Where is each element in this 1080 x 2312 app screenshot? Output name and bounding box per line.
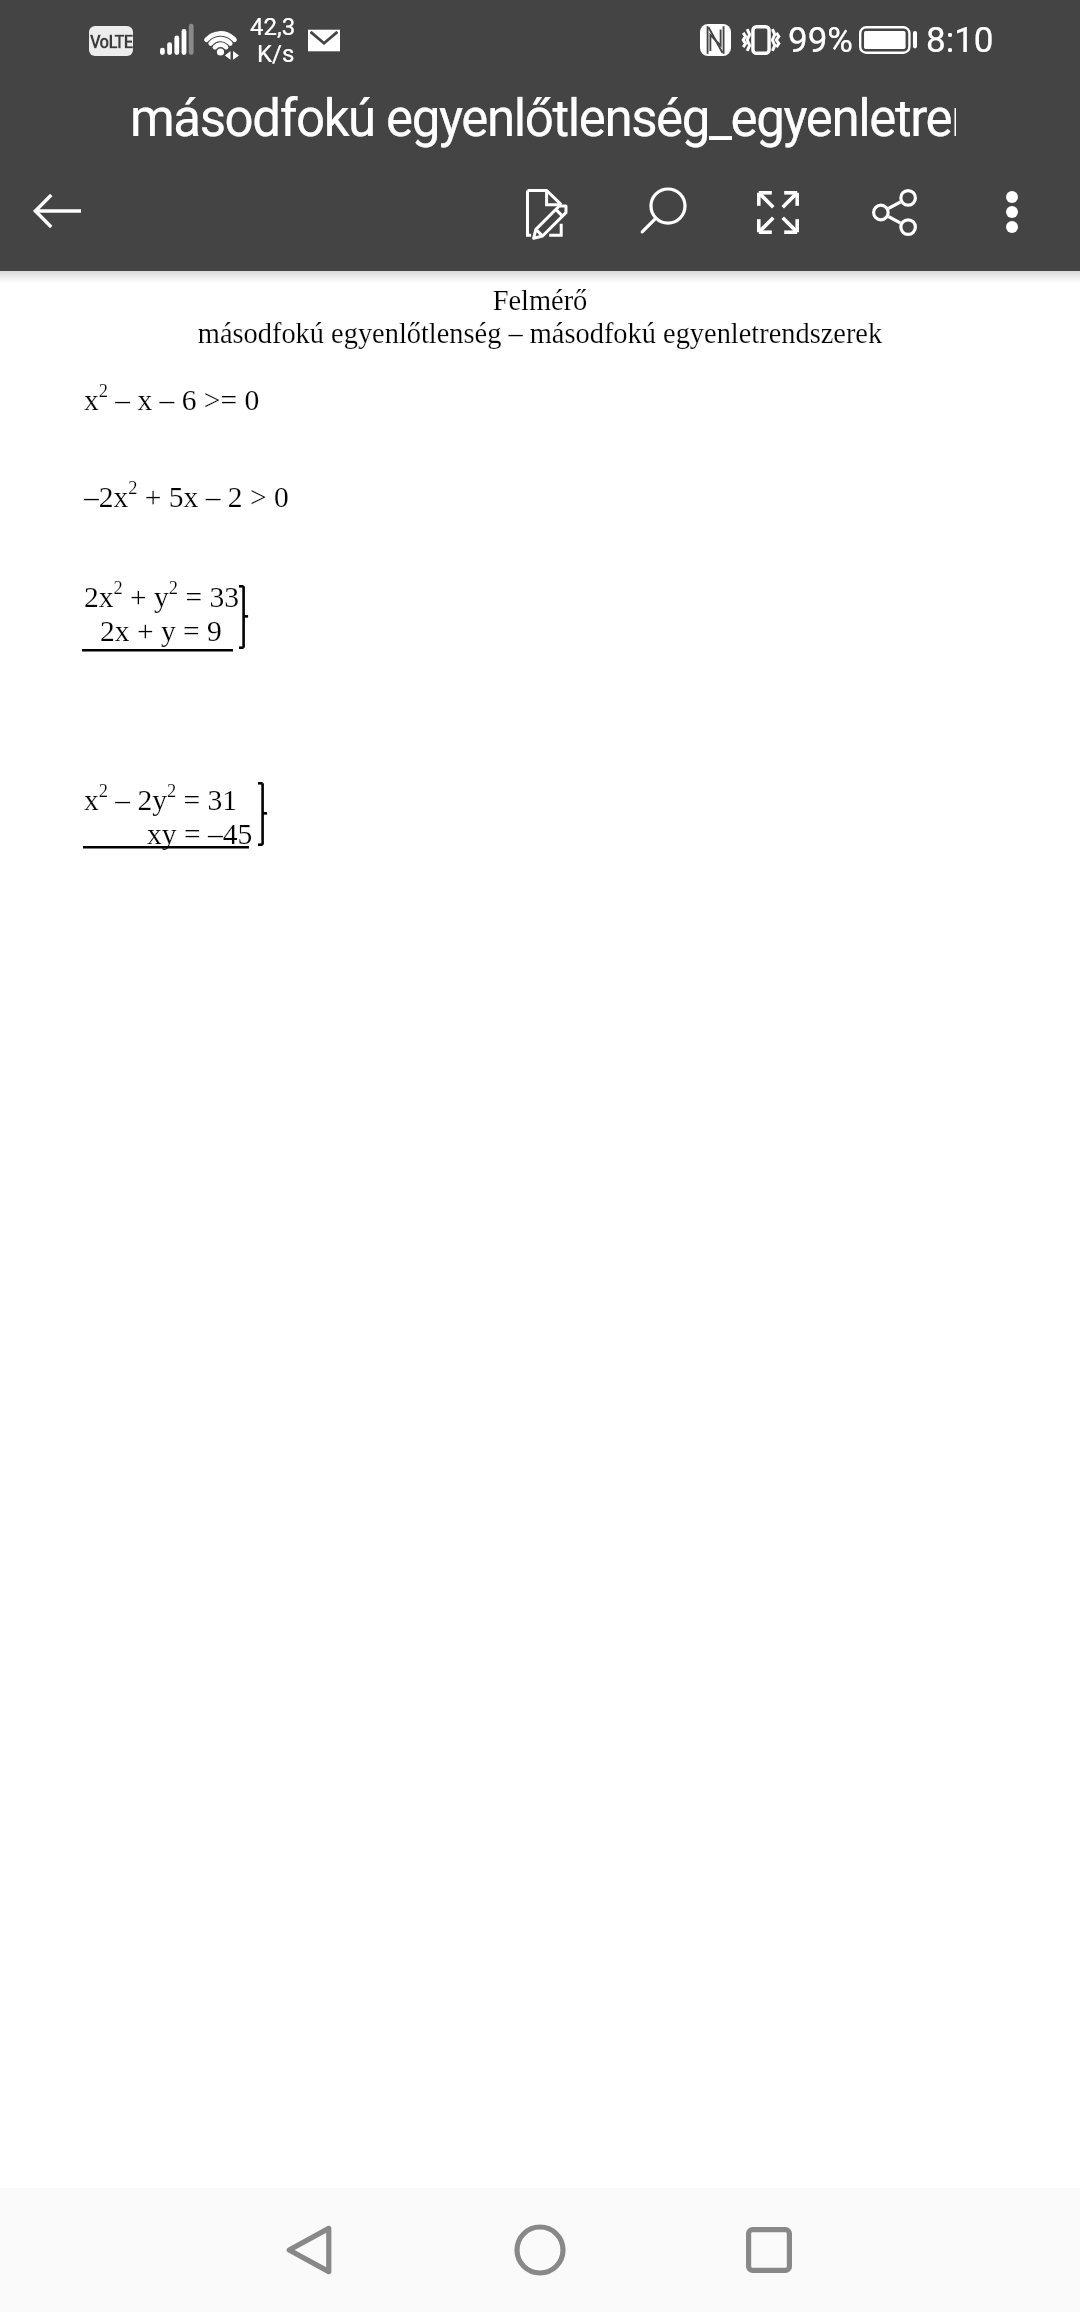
button[interactable]: Recents (707, 2188, 831, 2312)
button[interactable]: Edit (494, 159, 602, 267)
button[interactable]: Back (3, 157, 111, 265)
button[interactable]: More options (958, 158, 1066, 266)
button[interactable]: Fullscreen (724, 158, 832, 266)
staticText: VoLTE (90, 30, 133, 52)
staticText: –2x2 + 5x – 2 > 0 (84, 478, 289, 513)
staticText: másodfokú egyenlőtlenség – másodfokú egy… (0, 318, 1080, 349)
button[interactable]: Back (247, 2188, 371, 2312)
button[interactable]: Share (840, 158, 948, 266)
staticText: másodfokú egyenlőtlenség_egyenletrendsze… (130, 89, 956, 149)
staticText: x2 – 2y2 = 31 (84, 781, 238, 816)
staticText: 2x + y = 9 (100, 615, 222, 648)
staticText: 99% (788, 20, 853, 61)
button[interactable]: Search (608, 158, 716, 266)
staticText: 42,3 (250, 13, 296, 41)
staticText: x2 – x – 6 >= 0 (84, 381, 260, 416)
staticText: 8:10 (926, 20, 994, 61)
button[interactable]: Home (478, 2188, 602, 2312)
staticText: Felmérő (0, 285, 1080, 316)
staticText: K/s (257, 40, 295, 68)
staticText: 2x2 + y2 = 33 (84, 578, 239, 613)
staticText: xy = –45 (147, 818, 253, 851)
